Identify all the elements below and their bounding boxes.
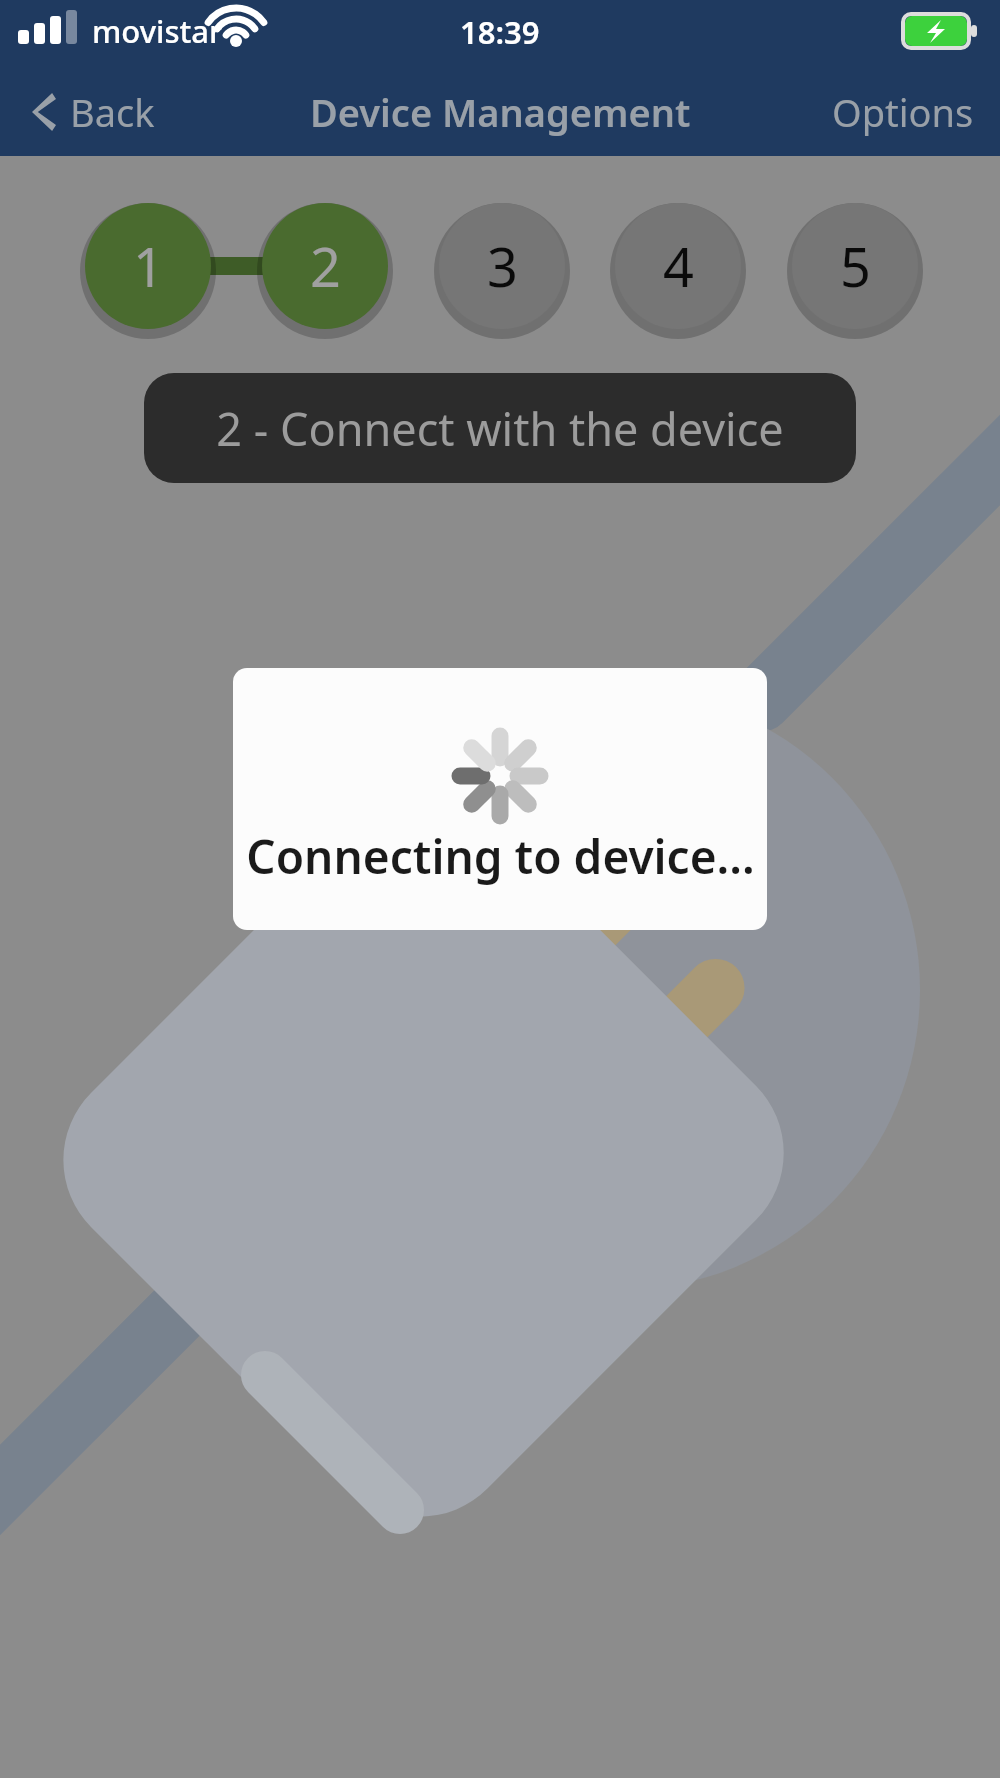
staticText: movistar: [92, 10, 223, 52]
staticText: 5: [840, 229, 871, 303]
staticText: Device Management: [310, 86, 691, 138]
button[interactable]: 1: [85, 203, 211, 329]
button[interactable]: Options: [806, 74, 1000, 150]
button[interactable]: 3: [439, 203, 565, 329]
staticText: 18:39: [460, 11, 540, 53]
staticText: 2 - Connect with the device: [216, 398, 784, 459]
button[interactable]: 2 - Connect with the device: [144, 373, 856, 483]
button[interactable]: 4: [615, 203, 741, 329]
staticText: Options: [832, 86, 974, 138]
staticText: 4: [663, 229, 694, 303]
button[interactable]: 2: [262, 203, 388, 329]
staticText: 3: [487, 229, 518, 303]
button[interactable]: 5: [792, 203, 918, 329]
staticText: 1: [133, 229, 164, 303]
staticText: Back: [70, 86, 155, 138]
staticText: Connecting to device...: [246, 825, 755, 888]
button[interactable]: Back: [0, 78, 175, 146]
staticText: 2: [310, 229, 341, 303]
